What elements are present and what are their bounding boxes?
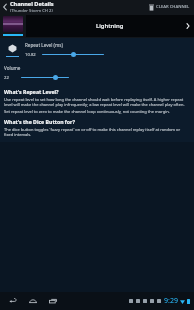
button[interactable]: 9:29 bbox=[129, 296, 194, 306]
staticText: Lightning bbox=[96, 22, 124, 30]
staticText: Set repeat level to zero to make the cha… bbox=[4, 109, 170, 114]
button[interactable] bbox=[0, 14, 26, 38]
button[interactable]: 22 slider bbox=[19, 73, 75, 82]
staticText: Channel Details bbox=[10, 0, 54, 8]
staticText: The dice button toggles 'fuzzy repeat' o… bbox=[4, 127, 190, 137]
button[interactable]: Navigate up bbox=[0, 0, 145, 14]
button[interactable]: Lightning bbox=[26, 15, 194, 37]
button[interactable]: Home bbox=[26, 294, 40, 308]
button[interactable]: 10.82 slider bbox=[40, 50, 110, 59]
staticText: 10.82 bbox=[25, 52, 36, 58]
staticText: Use repeat level to set how long the cha… bbox=[4, 97, 190, 107]
staticText: Volume bbox=[4, 65, 21, 71]
staticText: Repeat Level (ms) bbox=[25, 42, 63, 48]
button[interactable]: Toggle fuzzy repeat bbox=[4, 41, 21, 60]
other: Navigate up bbox=[2, 2, 8, 12]
staticText: 9:29 bbox=[164, 296, 178, 306]
other: Clear channel bbox=[149, 4, 154, 11]
staticText: What's Repeat Level? bbox=[4, 88, 59, 95]
staticText: (Thunder Storm CH 2) bbox=[10, 8, 53, 14]
button[interactable]: Recent apps bbox=[46, 294, 60, 308]
staticText: What's the Dice Button for? bbox=[4, 118, 75, 125]
button[interactable]: Back bbox=[6, 294, 20, 308]
other: Next channel bbox=[186, 22, 190, 30]
button[interactable]: Clear channel bbox=[145, 0, 194, 14]
staticText: 22 bbox=[4, 75, 9, 81]
staticText: CLEAR CHANNEL bbox=[156, 4, 190, 10]
